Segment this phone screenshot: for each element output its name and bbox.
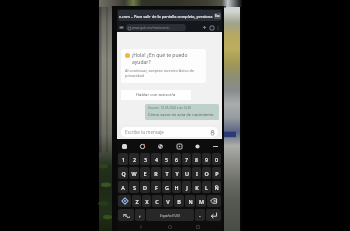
button[interactable]: B — [174, 195, 184, 207]
staticText: Cómo sacar mi acta de nacimiento — [148, 112, 214, 118]
button[interactable]: Stickers — [156, 142, 164, 150]
button[interactable]: N — [185, 195, 195, 207]
button[interactable]: 1 — [118, 153, 128, 165]
staticText: Q — [121, 170, 126, 177]
staticText: ¡Hola! ¿En qué te puedo ayudar? — [132, 52, 188, 66]
button[interactable]: Backspace — [207, 195, 221, 207]
button[interactable]: Hablar con asesor/a — [121, 90, 191, 100]
button[interactable]: Back — [136, 223, 146, 231]
staticText: L — [205, 184, 208, 191]
staticText: 8 — [195, 156, 198, 163]
button[interactable]: U — [182, 167, 191, 179]
staticText: Usuario · 10-05-2024 a las 14:36 — [148, 106, 191, 110]
staticText: J — [186, 184, 188, 191]
button[interactable]: More options — [216, 26, 220, 30]
staticText: I — [196, 170, 198, 177]
staticText: x.com – Para salir de la pantalla comple… — [119, 14, 213, 19]
button[interactable]: Settings — [193, 142, 201, 150]
button[interactable]: 0 — [212, 153, 221, 165]
button[interactable]: Downloads — [202, 25, 207, 30]
button[interactable]: Attach — [209, 129, 215, 135]
button[interactable]: Tab switcher — [209, 25, 214, 30]
staticText: Al continuar, aceptas nuestro Aviso de p… — [125, 68, 195, 79]
button[interactable]: 5 — [162, 153, 171, 165]
staticText: Hablar con asesor/a — [136, 92, 176, 98]
button[interactable]: P — [212, 167, 221, 179]
button[interactable]: I — [192, 167, 201, 179]
button[interactable]: R — [151, 167, 161, 179]
staticText: Y — [175, 170, 179, 177]
button[interactable]: C — [152, 195, 162, 207]
staticText: . — [199, 212, 201, 219]
button[interactable]: O — [202, 167, 211, 179]
button[interactable]: T — [162, 167, 171, 179]
staticText: B — [177, 198, 181, 205]
staticText: R — [154, 170, 158, 177]
staticText: A — [121, 184, 125, 191]
staticText: 0 — [215, 156, 218, 163]
button[interactable]: H — [172, 181, 181, 193]
staticText: S — [133, 184, 136, 191]
button[interactable]: 3 — [140, 153, 150, 165]
button[interactable]: G — [162, 181, 171, 193]
button[interactable]: W — [129, 167, 139, 179]
button[interactable]: V — [163, 195, 173, 207]
button[interactable]: Y — [172, 167, 181, 179]
staticText: 5 — [165, 156, 168, 163]
staticText: Escribe tu mensaje — [125, 129, 209, 135]
button[interactable]: Q — [118, 167, 128, 179]
button[interactable]: A — [118, 181, 128, 193]
button[interactable]: Collapse — [211, 142, 219, 150]
button[interactable]: D — [140, 181, 150, 193]
staticText: 7 — [185, 156, 188, 163]
button[interactable]: Tabs — [119, 25, 124, 30]
staticText: V — [166, 198, 170, 205]
button[interactable]: Z — [132, 195, 141, 207]
button[interactable]: X — [142, 195, 151, 207]
button[interactable]: Enter — [206, 209, 221, 221]
staticText: U — [185, 170, 189, 177]
button[interactable]: L — [202, 181, 211, 193]
button[interactable]: 7 — [182, 153, 191, 165]
staticText: H — [174, 184, 179, 191]
button[interactable]: Ñ — [212, 181, 221, 193]
staticText: Español (US) — [160, 213, 180, 218]
button[interactable]: Themes — [138, 142, 146, 150]
button[interactable]: Shift — [118, 195, 131, 207]
staticText: 9 — [205, 156, 208, 163]
staticText: 6 — [175, 156, 178, 163]
button[interactable]: Clipboard — [175, 142, 183, 150]
button[interactable]: Symbols — [118, 209, 134, 221]
button[interactable]: S — [129, 181, 139, 193]
button[interactable]: 4 — [151, 153, 161, 165]
staticText: O — [204, 170, 209, 177]
button[interactable]: E — [140, 167, 150, 179]
staticText: C — [155, 198, 159, 205]
button[interactable]: 6 — [172, 153, 181, 165]
button[interactable]: 2 — [129, 153, 139, 165]
button[interactable]: 8 — [192, 153, 201, 165]
staticText: Esc — [215, 14, 220, 18]
button[interactable]: J — [182, 181, 191, 193]
button[interactable]: Home — [165, 223, 175, 231]
button[interactable]: . — [195, 209, 205, 221]
button[interactable]: F — [151, 181, 161, 193]
staticText: G — [165, 184, 169, 191]
button[interactable]: Español (US) — [146, 209, 194, 221]
button[interactable]: Gboard — [120, 142, 128, 150]
button[interactable]: , — [135, 209, 145, 221]
staticText: Ñ — [214, 184, 219, 191]
button[interactable]: Recent apps — [193, 223, 203, 231]
staticText: E — [143, 170, 147, 177]
staticText: , — [139, 212, 141, 219]
button[interactable]: K — [192, 181, 201, 193]
staticText: 1 — [122, 156, 125, 163]
button[interactable]: Escribe tu mensaje — [121, 127, 218, 137]
staticText: 3 — [144, 156, 147, 163]
staticText: www.gob.mx/mexicoesti... — [132, 26, 172, 30]
button[interactable]: M — [196, 195, 206, 207]
button[interactable]: 9 — [202, 153, 211, 165]
staticText: P — [215, 170, 219, 177]
staticText: D — [143, 184, 147, 191]
button[interactable]: www.gob.mx/mexicoesti... — [126, 24, 186, 31]
